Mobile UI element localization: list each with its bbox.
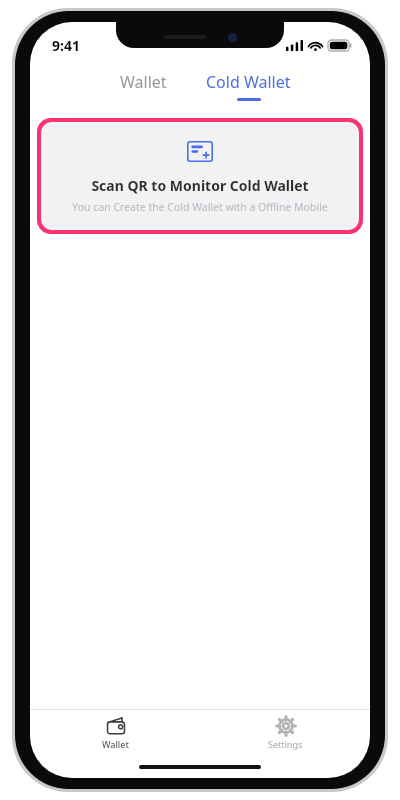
staticText: Wallet <box>120 71 167 93</box>
staticText: Wallet <box>102 738 129 750</box>
other: Wallet <box>106 717 126 735</box>
staticText: Scan QR to Monitor Cold Wallet <box>91 176 309 195</box>
button[interactable]: Scan QR to Monitor Cold Wallet <box>37 118 363 234</box>
button[interactable]: Settings <box>200 710 370 756</box>
staticText: You can Create the Cold Wallet with a Of… <box>72 200 328 214</box>
staticText: Cold Wallet <box>206 71 291 93</box>
button[interactable]: Wallet <box>30 710 200 756</box>
staticText: 9:41 <box>52 36 80 55</box>
other: Settings <box>277 717 295 735</box>
staticText: Settings <box>268 738 303 750</box>
button[interactable]: Cold Wallet <box>191 66 305 108</box>
button[interactable]: Wallet <box>95 66 191 108</box>
